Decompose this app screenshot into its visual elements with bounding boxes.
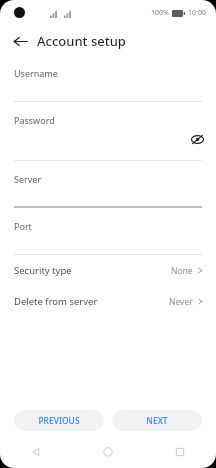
staticText: Port — [14, 220, 32, 232]
staticText: Delete from server — [14, 295, 98, 308]
staticText: Username — [14, 67, 58, 79]
button[interactable]: Delete from server — [0, 286, 216, 317]
button[interactable]: Show password — [188, 131, 206, 147]
staticText: Never — [169, 296, 193, 308]
button[interactable]: Home — [72, 441, 144, 463]
button[interactable]: Back — [0, 441, 72, 463]
staticText: NEXT — [146, 415, 168, 427]
staticText: None — [171, 265, 193, 277]
staticText: Account setup — [37, 32, 126, 50]
staticText: 100% — [151, 8, 169, 18]
button[interactable]: PREVIOUS — [14, 410, 104, 431]
staticText: Security type — [14, 264, 72, 277]
button[interactable]: NEXT — [112, 410, 202, 431]
button[interactable]: Security type — [0, 255, 216, 286]
staticText: Server — [14, 173, 42, 185]
staticText: Password — [14, 114, 55, 126]
button[interactable]: Back — [8, 29, 32, 53]
staticText: 10:00 — [188, 8, 206, 18]
staticText: PREVIOUS — [38, 415, 80, 427]
button[interactable]: Recent apps — [144, 441, 216, 463]
